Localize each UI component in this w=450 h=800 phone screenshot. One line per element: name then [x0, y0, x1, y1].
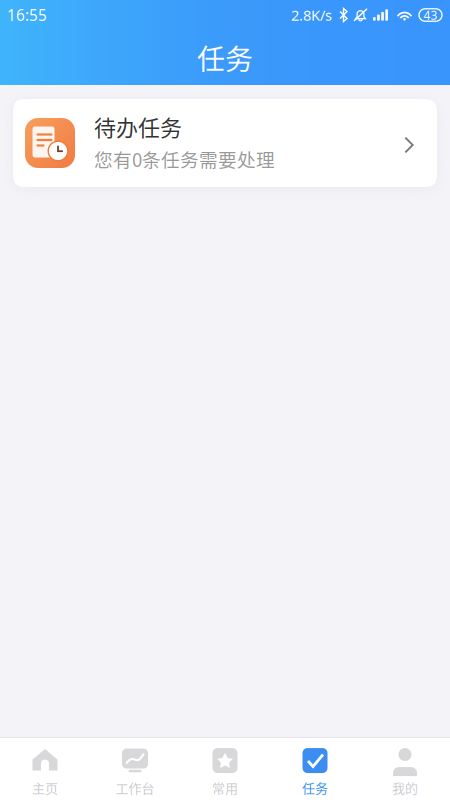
staticText: 待办任务 — [94, 111, 182, 142]
staticText: 我的 — [392, 778, 418, 797]
staticText: 常用 — [212, 778, 238, 797]
button[interactable]: 任务 — [270, 738, 360, 800]
button[interactable]: 主页 — [0, 738, 90, 800]
button[interactable]: 我的 — [360, 738, 450, 800]
staticText: 主页 — [32, 778, 58, 797]
staticText: 任务 — [197, 37, 253, 78]
staticText: 您有0条任务需要处理 — [94, 145, 275, 172]
staticText: 2.8K/s — [291, 5, 332, 25]
staticText: 16:55 — [7, 5, 47, 25]
button[interactable]: 待办任务 — [13, 99, 437, 187]
staticText: 任务 — [302, 778, 328, 797]
button[interactable]: 常用 — [180, 738, 270, 800]
button[interactable]: 工作台 — [90, 738, 180, 800]
staticText: 工作台 — [115, 778, 154, 797]
staticText: 43 — [423, 7, 437, 23]
